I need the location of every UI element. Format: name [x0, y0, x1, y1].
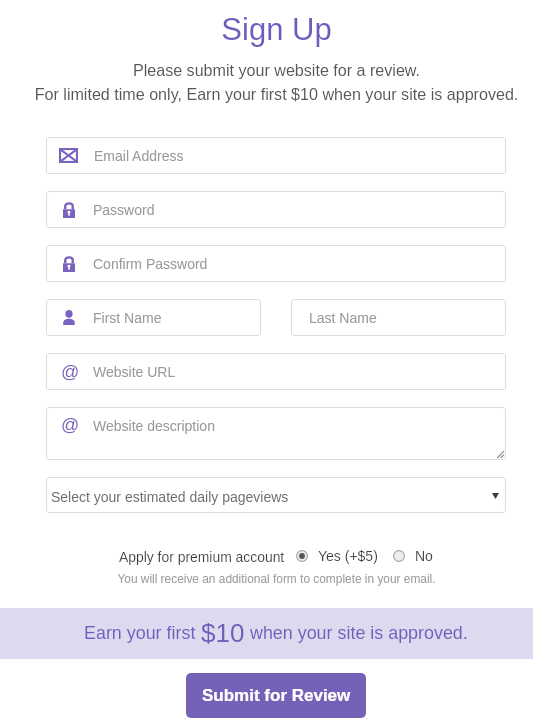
button[interactable]: Confirm Password	[46, 245, 506, 282]
staticText: First Name	[93, 310, 162, 326]
staticText: For limited time only, Earn your first $…	[10, 85, 533, 103]
staticText: Select your estimated daily pageviews	[51, 489, 289, 505]
staticText: Confirm Password	[93, 256, 208, 272]
staticText: Sign Up	[10, 12, 533, 47]
staticText: Submit for Review	[202, 686, 351, 705]
staticText: Website URL	[93, 364, 176, 380]
staticText: when your site is approved.	[245, 623, 468, 643]
staticText: @	[61, 362, 80, 382]
staticText: Earn your first	[84, 623, 201, 643]
button[interactable]: No	[393, 548, 433, 564]
staticText: Apply for premium account	[119, 549, 285, 565]
staticText: $10	[201, 618, 245, 647]
staticText: Please submit your website for a review.	[10, 61, 533, 79]
staticText: Website description	[93, 418, 215, 434]
button[interactable]: First Name	[46, 299, 261, 336]
staticText: Email Address	[94, 148, 184, 164]
button[interactable]: Submit for Review	[186, 673, 366, 718]
staticText: You will receive an additional form to c…	[10, 572, 533, 585]
staticText: Password	[93, 202, 155, 218]
button[interactable]: @	[46, 407, 506, 460]
button[interactable]: Last Name	[291, 299, 506, 336]
button[interactable]: Select your estimated daily pageviews	[46, 477, 506, 513]
button[interactable]: Yes (+$5)	[296, 548, 378, 564]
staticText: Yes (+$5)	[318, 548, 378, 564]
staticText: No	[415, 548, 433, 564]
staticText: Last Name	[309, 310, 377, 326]
staticText: @	[61, 415, 80, 435]
button[interactable]: @	[46, 353, 506, 390]
button[interactable]: Email Address	[46, 137, 506, 174]
button[interactable]: Password	[46, 191, 506, 228]
